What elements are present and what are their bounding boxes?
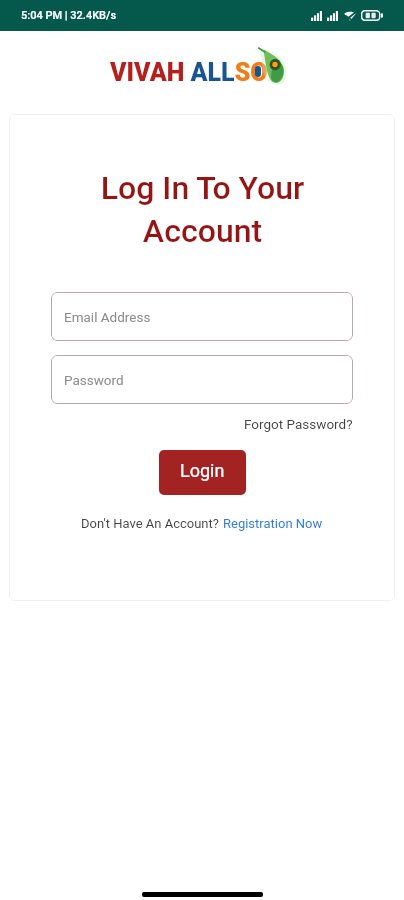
- staticText: Don't Have An Account?: [81, 516, 223, 531]
- button[interactable]: Login: [159, 450, 246, 495]
- staticText: VIVAH ALLSO: [110, 58, 268, 87]
- staticText: 5:04 PM | 32.4KB/s: [21, 9, 117, 22]
- button[interactable]: Forgot Password?: [244, 416, 353, 432]
- staticText: Password: [64, 372, 124, 388]
- staticText: Login: [180, 460, 225, 481]
- button[interactable]: Email Address: [51, 292, 353, 341]
- other: Battery 32 percent: [361, 10, 383, 21]
- staticText: Registration Now: [223, 516, 323, 531]
- other: Mobile signal strength: [327, 11, 338, 21]
- staticText: Forgot Password?: [244, 416, 353, 432]
- other: Mobile signal strength: [311, 11, 322, 21]
- staticText: Email Address: [64, 309, 151, 325]
- other: Vivah Allso peacock feather logo mark: [258, 48, 292, 88]
- staticText: Log In To Your Account: [85, 169, 320, 250]
- other: Wi-Fi off: [344, 11, 356, 21]
- button[interactable]: Password: [51, 355, 353, 404]
- button[interactable]: Registration Now: [223, 516, 323, 531]
